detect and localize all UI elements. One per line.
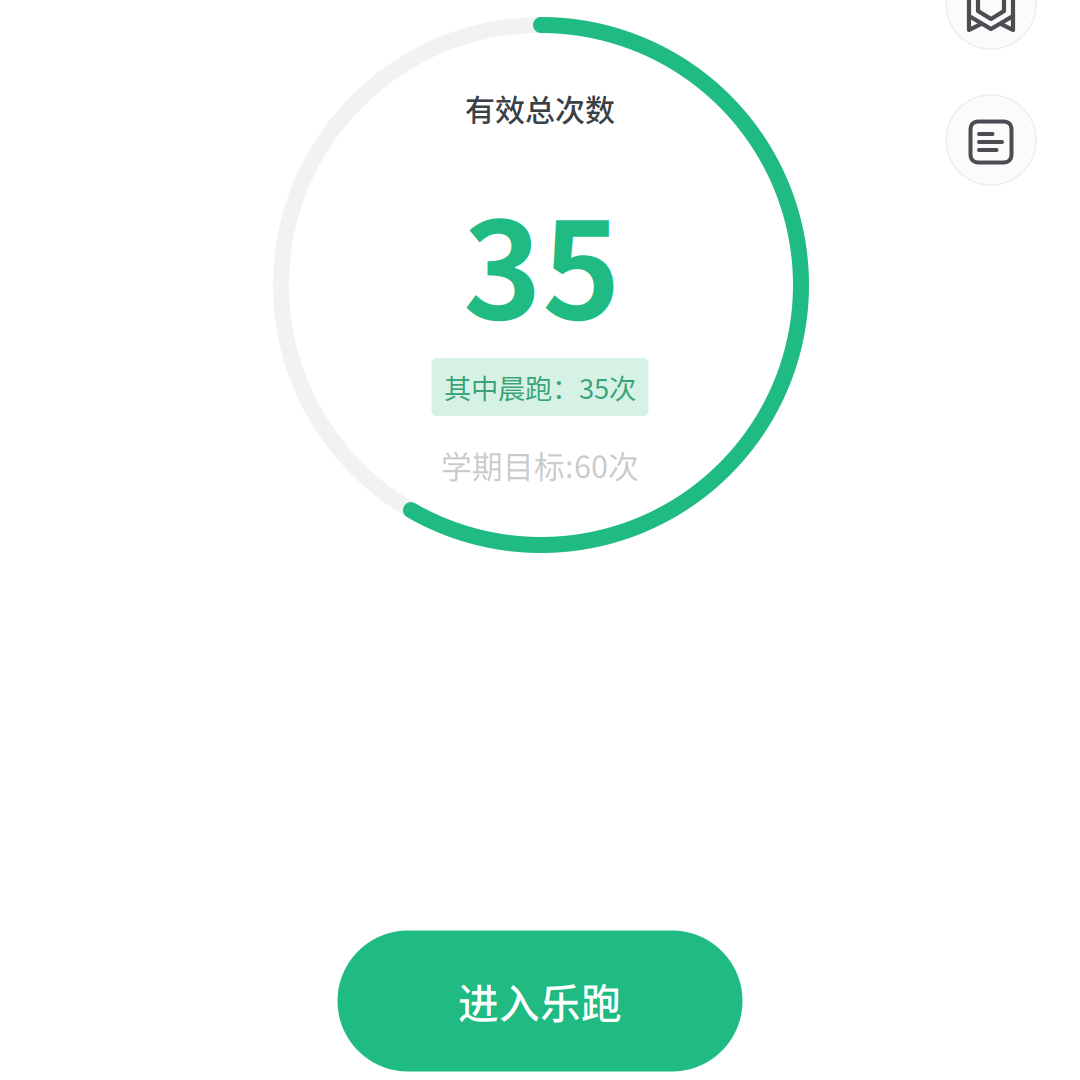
button[interactable]: Records [946,95,1036,185]
button[interactable]: 进入乐跑 [337,930,742,1071]
button[interactable]: Badges [946,0,1036,49]
staticText: 其中晨跑：35次 [444,367,636,407]
staticText: 35 [463,164,621,358]
staticText: 有效总次数 [465,86,615,130]
staticText: 学期目标:60次 [441,443,639,487]
staticText: 进入乐跑 [458,972,622,1030]
